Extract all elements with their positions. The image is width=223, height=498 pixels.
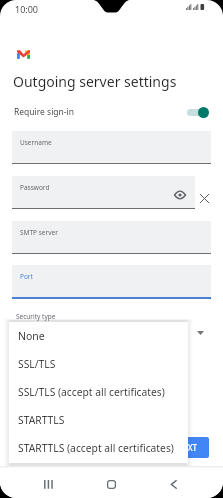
button[interactable]: NEXT [165,437,209,458]
button[interactable]: Back [170,480,179,489]
button[interactable]: Require sign-in toggle [187,106,208,118]
staticText: SSL/TLS [18,357,56,371]
staticText: STARTTLS [18,413,65,427]
staticText: NEXT [177,442,198,453]
button[interactable]: Require sign-in [0,102,223,122]
staticText: Security type [16,312,56,321]
staticText: Username [20,138,52,147]
button[interactable]: Clear password [199,193,210,204]
staticText: Require sign-in [14,106,75,118]
staticText: SSL/TLS (accept all certificates) [18,385,165,399]
staticText: Outgoing server settings [13,72,177,91]
button[interactable]: SMTP server [12,221,211,254]
button[interactable]: SSL/TLS [9,350,188,378]
staticText: 10:00 [15,3,39,15]
button[interactable]: Recent apps [44,480,53,489]
staticText: Port [20,272,33,281]
button[interactable]: Show password [174,189,186,201]
staticText: SMTP server [20,228,58,237]
button[interactable]: Username [12,131,211,164]
button[interactable]: Home [107,480,116,489]
button[interactable]: None [9,322,188,350]
button[interactable]: Password [12,176,195,209]
staticText: None [18,329,45,343]
staticText: STARTTLS (accept all certificates) [18,441,174,455]
staticText: Password [20,183,50,192]
button[interactable]: STARTTLS (accept all certificates) [9,434,188,462]
button[interactable]: STARTTLS [9,406,188,434]
button[interactable]: Port [12,265,211,299]
button[interactable]: SSL/TLS (accept all certificates) [9,378,188,406]
button[interactable]: Open security type menu [197,331,204,335]
